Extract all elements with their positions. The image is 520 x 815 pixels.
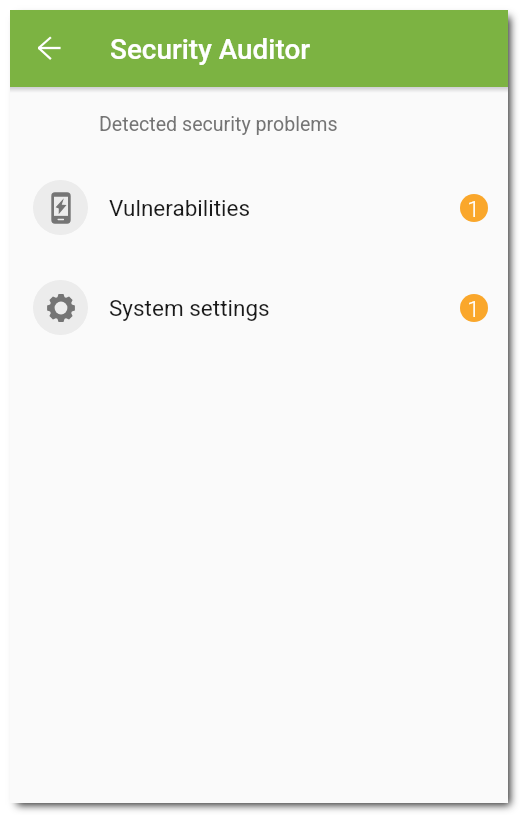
staticText: System settings [109,295,270,321]
staticText: 1 [467,296,480,322]
button[interactable]: Vulnerabilities [10,172,508,243]
staticText: 1 [467,196,480,222]
button[interactable]: Navigate up [35,34,63,62]
staticText: Vulnerabilities [109,195,251,221]
button[interactable]: System settings [10,272,508,343]
staticText: Detected security problems [99,113,338,136]
staticText: Security Auditor [110,33,311,66]
